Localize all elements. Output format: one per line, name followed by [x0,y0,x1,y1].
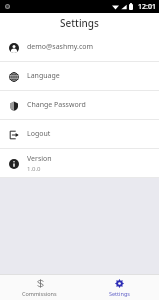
button[interactable]: Language [0,62,159,90]
staticText: Language [27,71,60,81]
staticText: Logout [27,129,51,139]
staticText: 1.0.0 [27,165,41,173]
button[interactable]: Settings [79,275,159,300]
button[interactable]: Change Password [0,91,159,119]
staticText: Settings [60,16,99,30]
staticText: Settings [109,290,130,297]
button[interactable]: Account [0,33,159,61]
staticText: Change Password [27,100,86,110]
staticText: demo@sashmy.com [27,42,94,52]
staticText: Version [27,154,52,164]
button[interactable]: Logout [0,120,159,148]
button[interactable]: Version [0,149,159,177]
button[interactable]: Commissions [0,275,79,300]
staticText: 12:01 [138,2,156,12]
staticText: Commissions [22,290,57,297]
